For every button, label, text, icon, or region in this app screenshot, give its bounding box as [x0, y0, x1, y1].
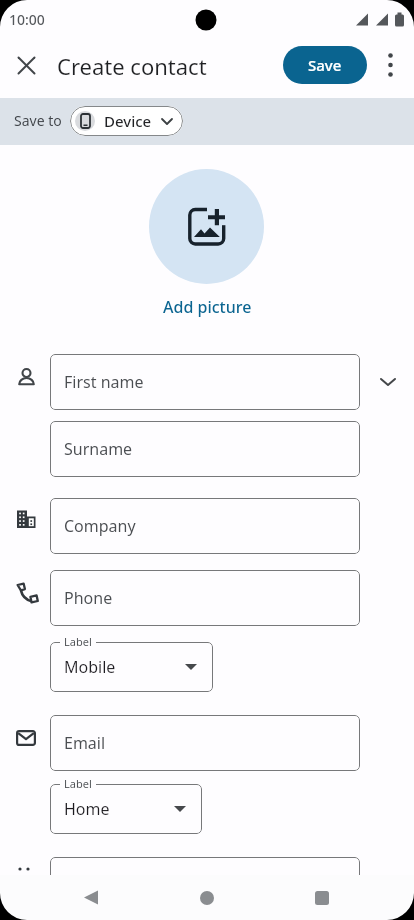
- button[interactable]: [372, 47, 408, 83]
- staticText: First name: [64, 371, 144, 393]
- button[interactable]: [183, 875, 231, 920]
- staticText: Save to: [14, 111, 62, 130]
- staticText: Phone: [64, 587, 113, 609]
- button[interactable]: Phone: [50, 570, 360, 626]
- button[interactable]: First name: [50, 354, 360, 410]
- staticText: Email: [64, 732, 106, 754]
- button[interactable]: [50, 857, 360, 913]
- staticText: Home: [64, 798, 110, 820]
- button[interactable]: [149, 169, 264, 284]
- button[interactable]: [8, 47, 44, 83]
- staticText: Surname: [64, 438, 133, 460]
- staticText: Save: [308, 55, 342, 75]
- staticText: Add picture: [163, 296, 252, 318]
- button[interactable]: Company: [50, 498, 360, 554]
- button[interactable]: [298, 875, 346, 920]
- staticText: Label: [64, 634, 92, 649]
- button[interactable]: [370, 364, 406, 400]
- staticText: Label: [64, 776, 92, 791]
- button[interactable]: Surname: [50, 421, 360, 477]
- staticText: Create contact: [57, 51, 207, 81]
- button[interactable]: Home: [50, 784, 202, 834]
- staticText: Company: [64, 515, 136, 537]
- button[interactable]: [66, 875, 114, 920]
- button[interactable]: Mobile: [50, 642, 213, 692]
- button[interactable]: Add picture: [163, 296, 252, 318]
- button[interactable]: Device: [70, 106, 183, 136]
- button[interactable]: Email: [50, 715, 360, 771]
- staticText: 10:00: [9, 10, 45, 29]
- button[interactable]: Save: [283, 46, 367, 84]
- staticText: Device: [104, 111, 152, 131]
- staticText: Mobile: [64, 656, 116, 678]
